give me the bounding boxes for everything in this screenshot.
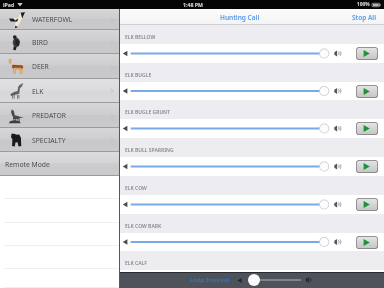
button[interactable]: Play	[356, 47, 378, 60]
staticText: ELK BUGLE	[125, 72, 152, 79]
staticText: 100%	[357, 1, 370, 8]
button[interactable]	[119, 233, 384, 251]
staticText: BIRD	[32, 38, 48, 47]
staticText: Hunting Call	[220, 13, 260, 22]
button[interactable]: DEER	[0, 54, 119, 79]
staticText: DEER	[32, 62, 49, 71]
staticText: ELK BULL SPARRING	[125, 147, 174, 154]
button[interactable]	[119, 119, 384, 138]
staticText: ELK COW	[125, 185, 147, 192]
button[interactable]: Play	[356, 85, 378, 98]
staticText: Remote Mode	[5, 160, 50, 169]
button[interactable]	[119, 195, 384, 214]
button[interactable]: BIRD	[0, 30, 119, 54]
button[interactable]: Stop All	[352, 13, 377, 22]
button[interactable]: Loop Interval	[190, 276, 230, 284]
staticText: SPECIALTY	[32, 136, 66, 145]
button[interactable]: ELK	[0, 79, 119, 103]
button[interactable]	[119, 44, 384, 63]
staticText: ELK BUGLE GRUNT	[125, 109, 170, 116]
staticText: iPad	[3, 1, 15, 8]
button[interactable]: SPECIALTY	[0, 128, 119, 152]
button[interactable]: Hunting Call	[220, 13, 260, 22]
staticText: Loop Interval	[190, 276, 230, 284]
button[interactable]	[119, 82, 384, 100]
button[interactable]: Play	[356, 236, 378, 249]
button[interactable]	[119, 157, 384, 176]
staticText: WATERFOWL	[32, 15, 73, 24]
button[interactable]: PREDATOR	[0, 103, 119, 128]
staticText: ELK CALF	[125, 260, 148, 267]
button[interactable]: Play	[356, 198, 378, 211]
staticText: ELK BELLOW	[125, 34, 156, 41]
staticText: ELK COW BARK	[125, 223, 162, 230]
button[interactable]: Play	[356, 160, 378, 173]
staticText: ELK	[32, 87, 44, 96]
button[interactable]: Remote Mode	[0, 152, 119, 176]
button[interactable]	[119, 270, 384, 288]
staticText: Stop All	[352, 13, 377, 22]
staticText: PREDATOR	[32, 111, 66, 120]
button[interactable]: WATERFOWL	[0, 9, 119, 30]
button[interactable]: Play	[356, 122, 378, 135]
staticText: 1:48 PM	[183, 1, 203, 8]
